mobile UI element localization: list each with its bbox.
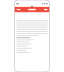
button[interactable]: Back [16, 7, 21, 12]
button[interactable]: Share [43, 7, 48, 12]
